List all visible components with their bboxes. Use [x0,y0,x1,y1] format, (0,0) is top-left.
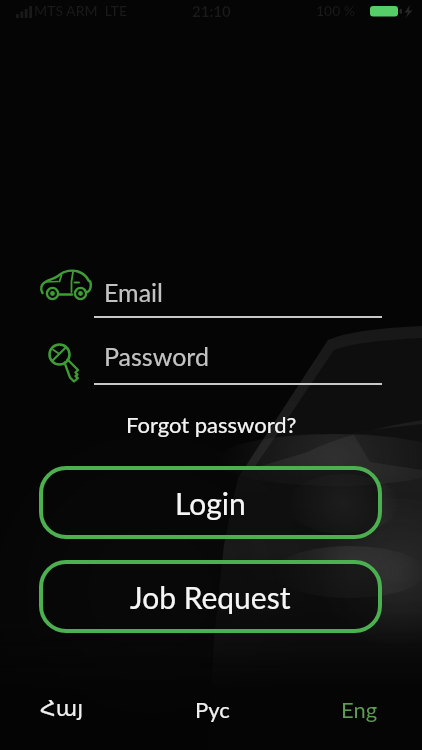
staticText: Job Request [130,579,291,615]
staticText: Login [175,485,246,521]
button[interactable]: Рус [195,696,230,722]
staticText: MTS ARM LTE [34,2,128,19]
button[interactable]: Job Request [39,560,382,633]
staticText: Password [104,341,209,371]
staticText: 21:10 [192,2,231,20]
staticText: Email [104,277,163,307]
staticText: 100 % [316,2,356,19]
button[interactable]: Հայ [40,696,84,722]
button[interactable]: Login [39,466,382,539]
button[interactable]: Eng [341,696,378,722]
button[interactable]: Forgot password? [126,411,297,437]
